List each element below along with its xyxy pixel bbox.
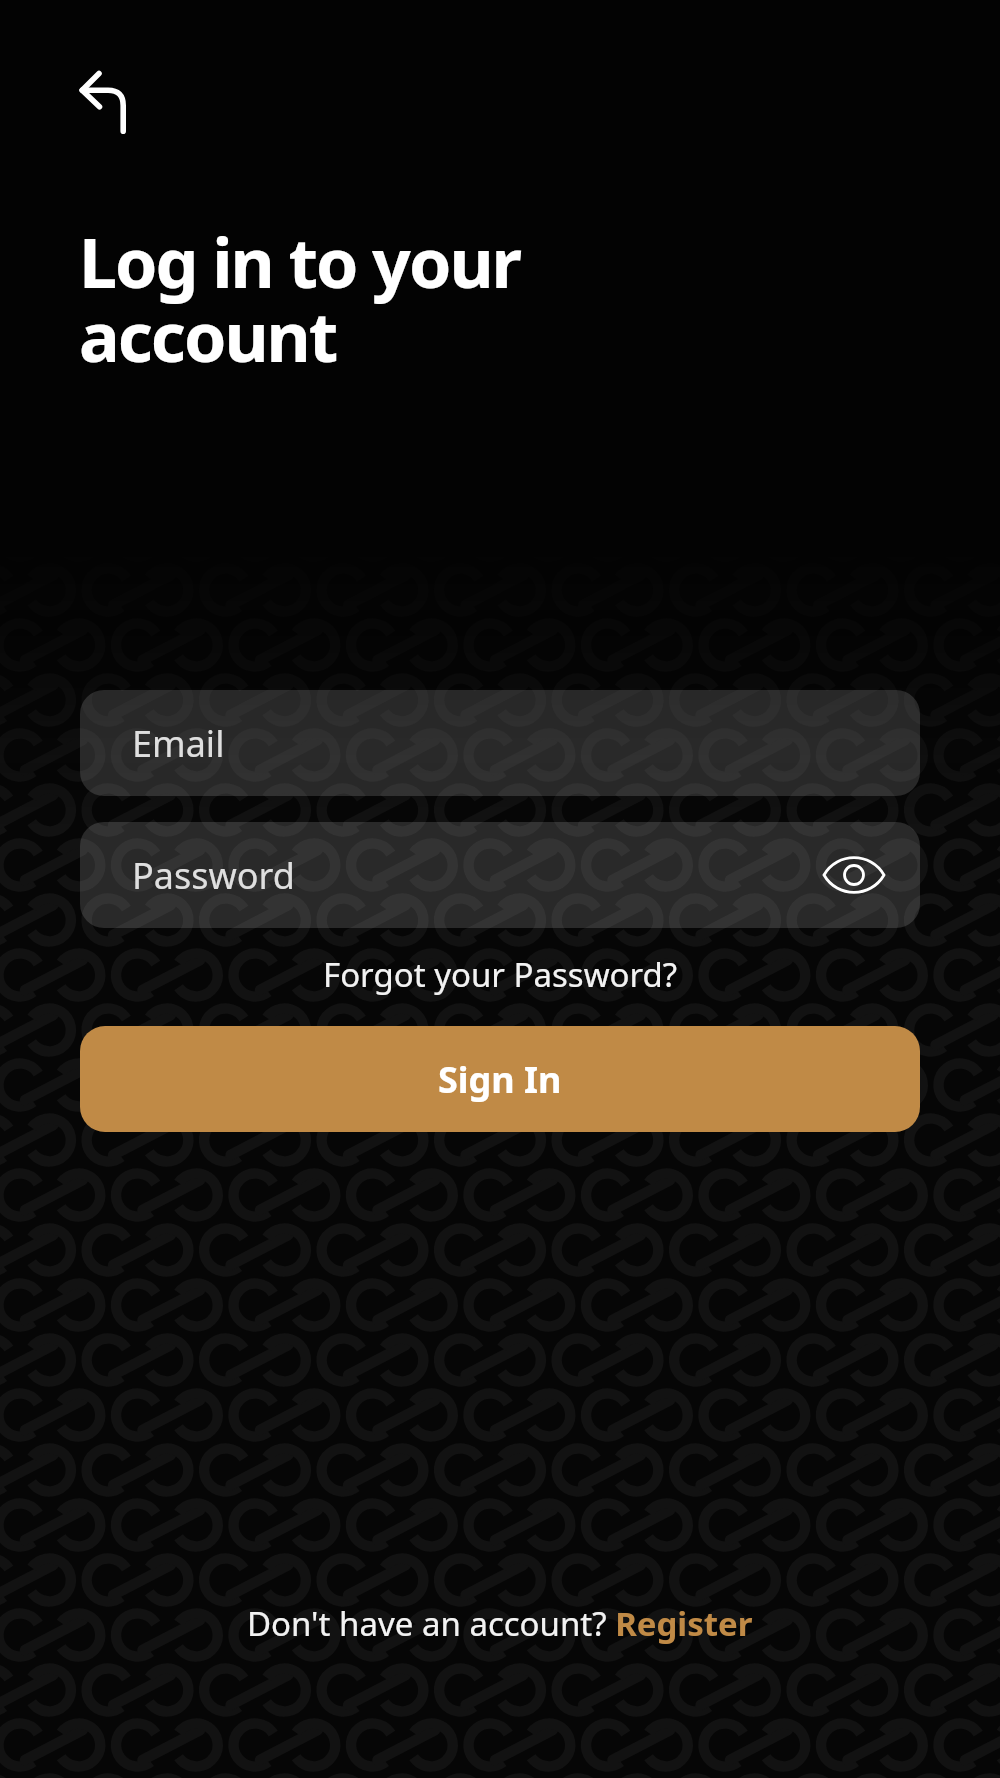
button[interactable]: Email (80, 690, 920, 796)
staticText: Email (132, 719, 225, 768)
button[interactable]: Forgot your Password? (323, 952, 678, 997)
button[interactable]: Sign In (80, 1026, 920, 1132)
button[interactable]: Don't have an account? Register (247, 1601, 753, 1646)
staticText: Log in to your account (79, 215, 520, 382)
button[interactable] (822, 843, 886, 907)
button[interactable]: Password (80, 822, 920, 928)
button[interactable] (62, 53, 142, 133)
staticText: Sign In (438, 1055, 562, 1104)
staticText: Password (132, 851, 295, 900)
